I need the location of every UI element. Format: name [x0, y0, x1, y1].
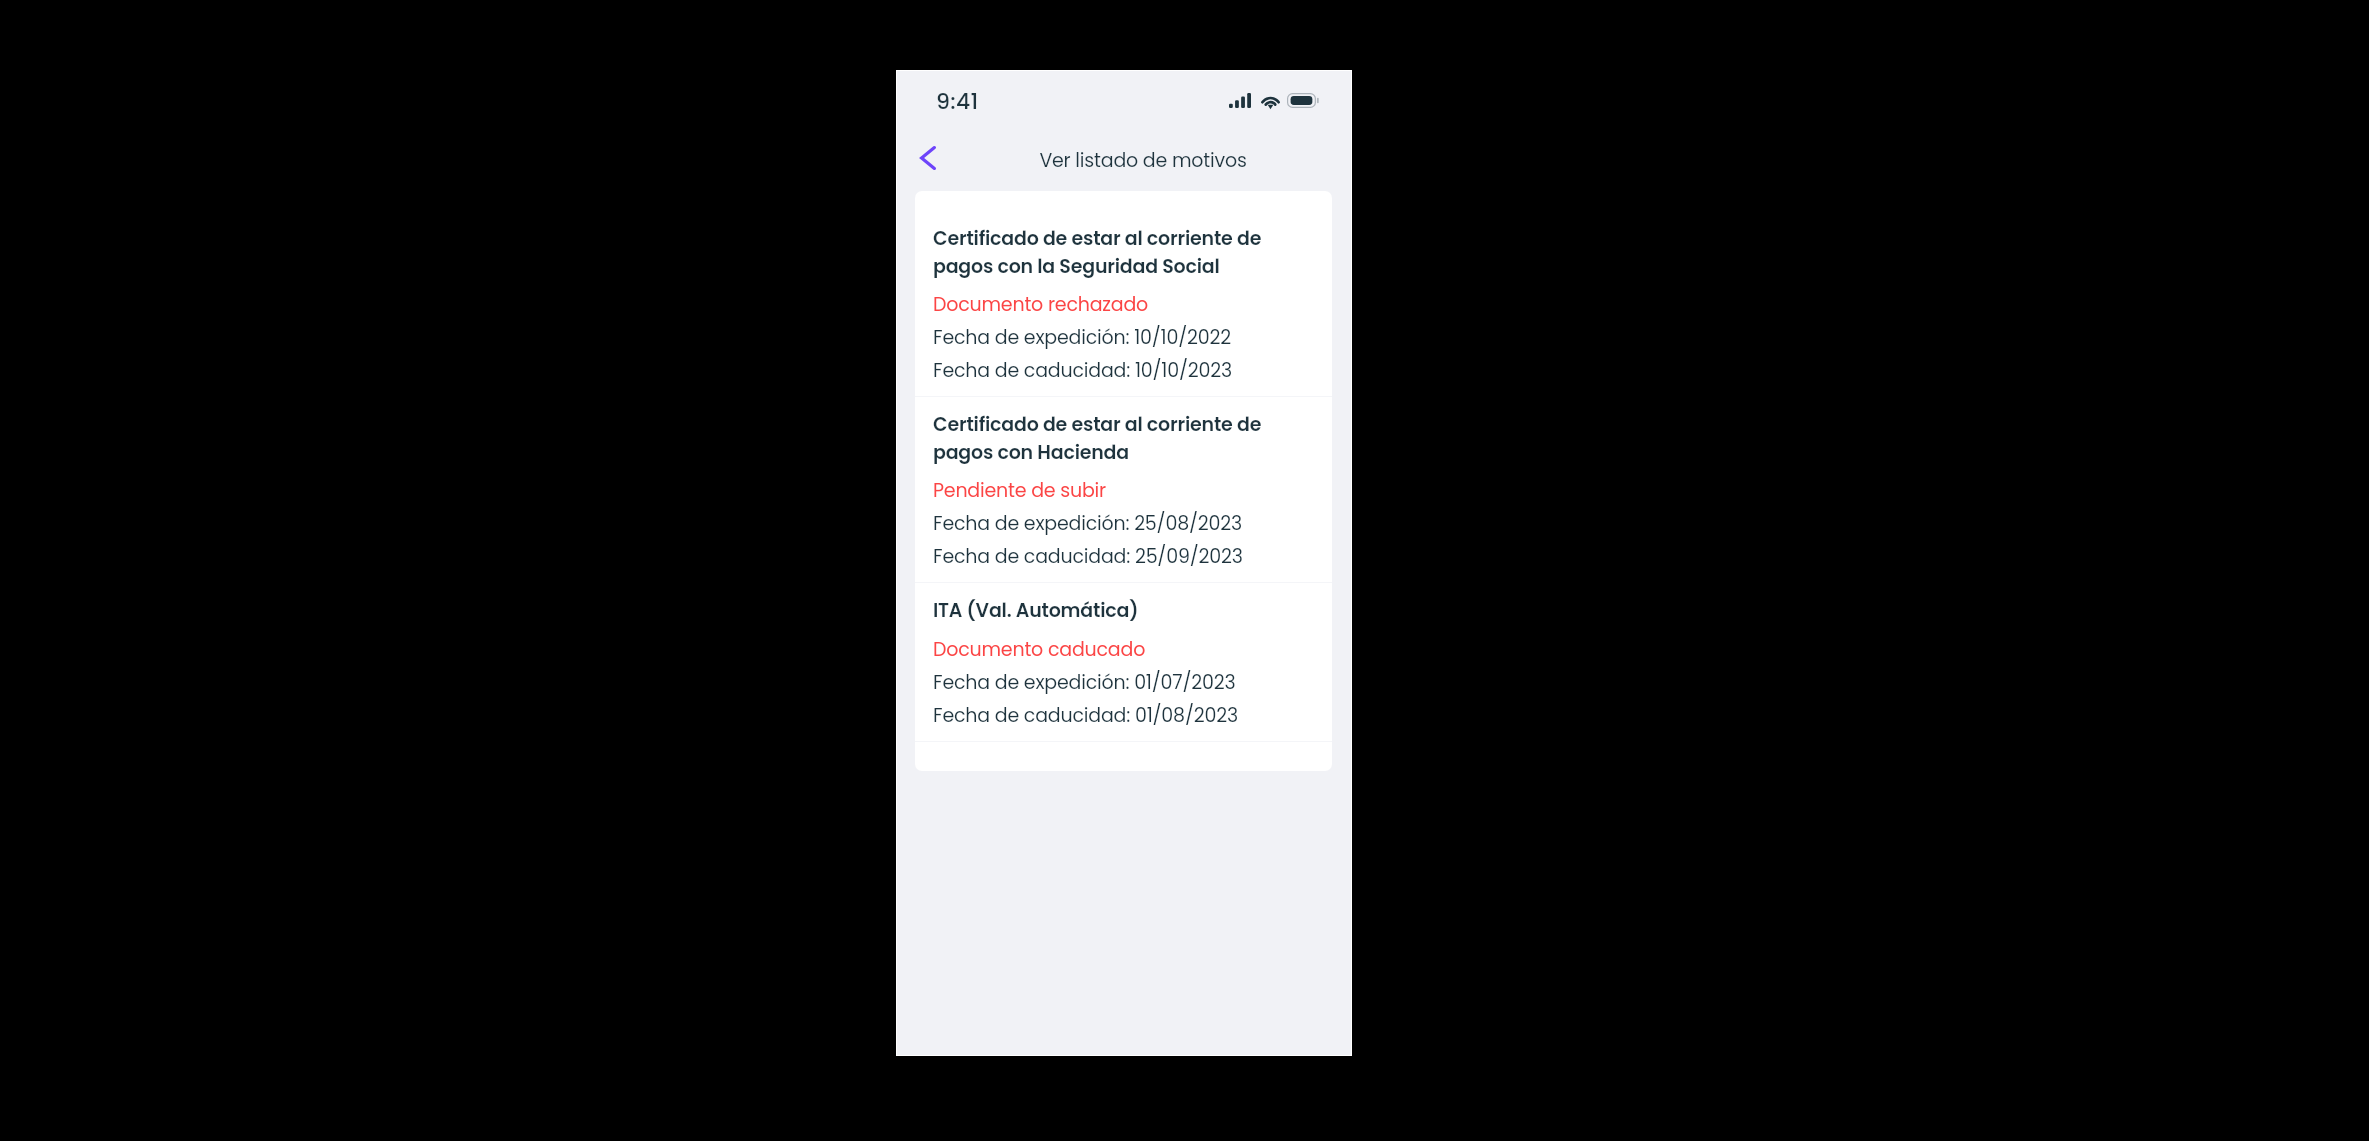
staticText: 9:41 [936, 86, 979, 117]
staticText: Fecha de caducidad: 25/09/2023 [933, 543, 1243, 570]
staticText: Ver listado de motivos [1039, 147, 1247, 174]
staticText: Pendiente de subir [933, 477, 1106, 504]
staticText: Fecha de expedición: 01/07/2023 [933, 669, 1236, 696]
button[interactable]: ITA (Val. Automática) [915, 583, 1332, 741]
staticText: Documento caducado [933, 636, 1146, 663]
staticText: Certificado de estar al corriente de pag… [933, 411, 1314, 465]
staticText: Fecha de caducidad: 10/10/2023 [933, 357, 1232, 384]
staticText: Certificado de estar al corriente de pag… [933, 225, 1314, 279]
button[interactable]: Certificado de estar al corriente de pag… [915, 211, 1332, 396]
staticText: ITA (Val. Automática) [933, 597, 1139, 624]
staticText: Fecha de expedición: 10/10/2022 [933, 324, 1231, 351]
staticText: Documento rechazado [933, 291, 1149, 318]
button[interactable]: Certificado de estar al corriente de pag… [915, 397, 1332, 582]
staticText: Fecha de caducidad: 01/08/2023 [933, 702, 1238, 729]
button[interactable]: Back [908, 134, 948, 182]
staticText: Fecha de expedición: 25/08/2023 [933, 510, 1242, 537]
